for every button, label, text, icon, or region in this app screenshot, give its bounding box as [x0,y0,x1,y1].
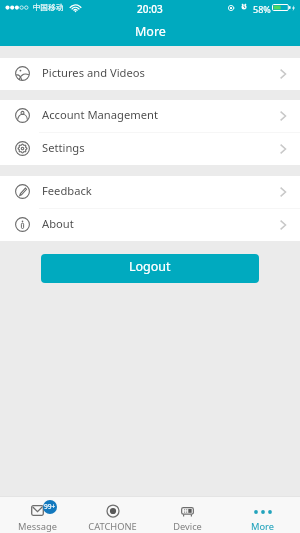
button[interactable]: About [0,209,300,241]
button[interactable]: Account Management [0,100,300,132]
staticText: CATCHONE [88,520,137,533]
staticText: Account Management [42,107,158,122]
staticText: Device [173,520,202,533]
staticText: Feedback [42,183,92,198]
button[interactable]: CATCHONE [75,497,150,533]
staticText: Pictures and Videos [42,65,145,80]
button[interactable]: 99+ [0,497,75,533]
button[interactable]: Device [150,497,225,533]
button[interactable]: Logout [41,254,259,283]
staticText: Settings [42,140,85,155]
button[interactable]: Pictures and Videos [0,58,300,90]
staticText: 99+ [44,502,56,511]
staticText: Message [18,520,57,533]
button[interactable]: Feedback [0,176,300,208]
staticText: More [251,520,274,533]
staticText: More [135,23,166,40]
staticText: 中国移动 [33,3,64,13]
staticText: About [42,216,74,231]
button[interactable]: Settings [0,133,300,165]
staticText: 58% [253,3,271,15]
staticText: 20:03 [137,2,163,16]
button[interactable]: More [225,497,300,533]
staticText: Logout [129,258,171,275]
